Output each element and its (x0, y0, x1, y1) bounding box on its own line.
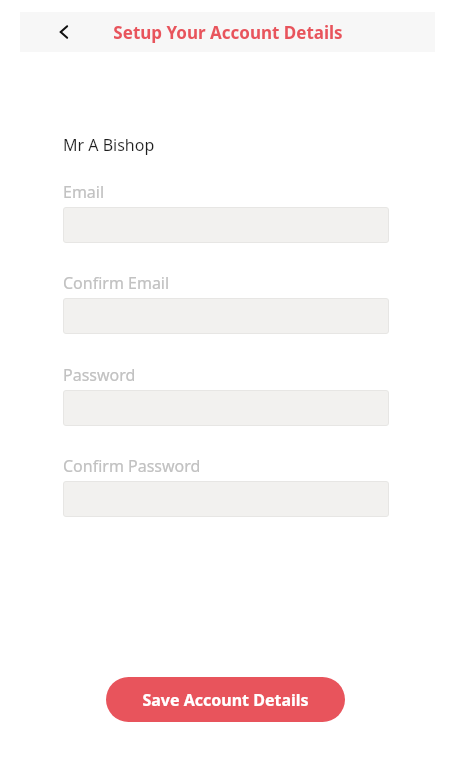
staticText: Mr A Bishop (63, 134, 155, 156)
staticText: Setup Your Account Details (113, 21, 343, 44)
staticText: Confirm Password (63, 455, 201, 477)
staticText: Confirm Email (63, 272, 170, 294)
button[interactable]: Save Account Details (106, 677, 345, 722)
button[interactable]: Back (45, 12, 85, 52)
staticText: Save Account Details (142, 689, 309, 711)
staticText: Password (63, 364, 136, 386)
staticText: Email (63, 181, 105, 203)
